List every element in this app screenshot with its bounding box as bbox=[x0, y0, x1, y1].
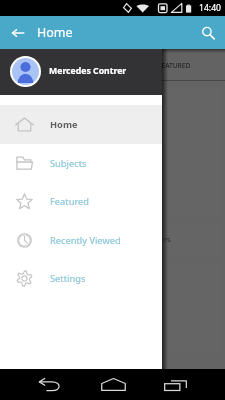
button[interactable]: Subjects bbox=[0, 144, 162, 183]
staticText: Subjects bbox=[50, 157, 87, 170]
button[interactable]: Settings bbox=[0, 259, 162, 298]
button[interactable]: Search bbox=[190, 16, 225, 49]
staticText: Settings bbox=[50, 272, 86, 285]
button[interactable]: Featured bbox=[0, 182, 162, 221]
staticText: rs bbox=[164, 235, 171, 245]
staticText: Home bbox=[50, 118, 78, 131]
staticText: 14:40 bbox=[199, 2, 221, 14]
staticText: Featured bbox=[50, 195, 90, 208]
staticText: FEATURED bbox=[158, 61, 191, 70]
staticText: Mercedes Contrer bbox=[49, 65, 127, 77]
staticText: Recently Viewed bbox=[50, 234, 121, 247]
button[interactable]: Home bbox=[0, 105, 162, 144]
button[interactable]: Back bbox=[0, 16, 35, 49]
button[interactable]: Recents bbox=[150, 369, 225, 400]
button[interactable]: Home bbox=[75, 369, 150, 400]
staticText: Home bbox=[37, 24, 73, 41]
staticText: SUBJECTS bbox=[103, 61, 133, 70]
button[interactable]: Back bbox=[0, 369, 75, 400]
button[interactable]: Recently Viewed bbox=[0, 221, 162, 260]
